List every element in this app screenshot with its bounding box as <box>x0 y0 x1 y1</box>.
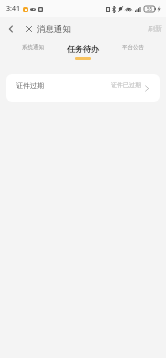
staticText: 消息通知 <box>37 24 71 35</box>
button[interactable]: Back <box>0 17 21 41</box>
staticText: 3:41 <box>6 4 20 14</box>
staticText: 系统通知 <box>22 44 44 51</box>
button[interactable]: 系统通知 <box>8 41 58 63</box>
button[interactable]: Close <box>21 17 37 41</box>
staticText: 证件过期 <box>16 81 44 90</box>
staticText: 刷新 <box>148 24 162 33</box>
staticText: 55 <box>147 6 153 12</box>
button[interactable]: 证件过期 <box>6 74 160 102</box>
button[interactable]: 平台公告 <box>108 41 158 63</box>
staticText: 任务待办 <box>67 44 99 54</box>
button[interactable]: 任务待办 <box>58 41 108 63</box>
staticText: 平台公告 <box>122 44 144 51</box>
button[interactable]: 刷新 <box>142 17 166 41</box>
staticText: 证件已过期 <box>111 81 141 89</box>
